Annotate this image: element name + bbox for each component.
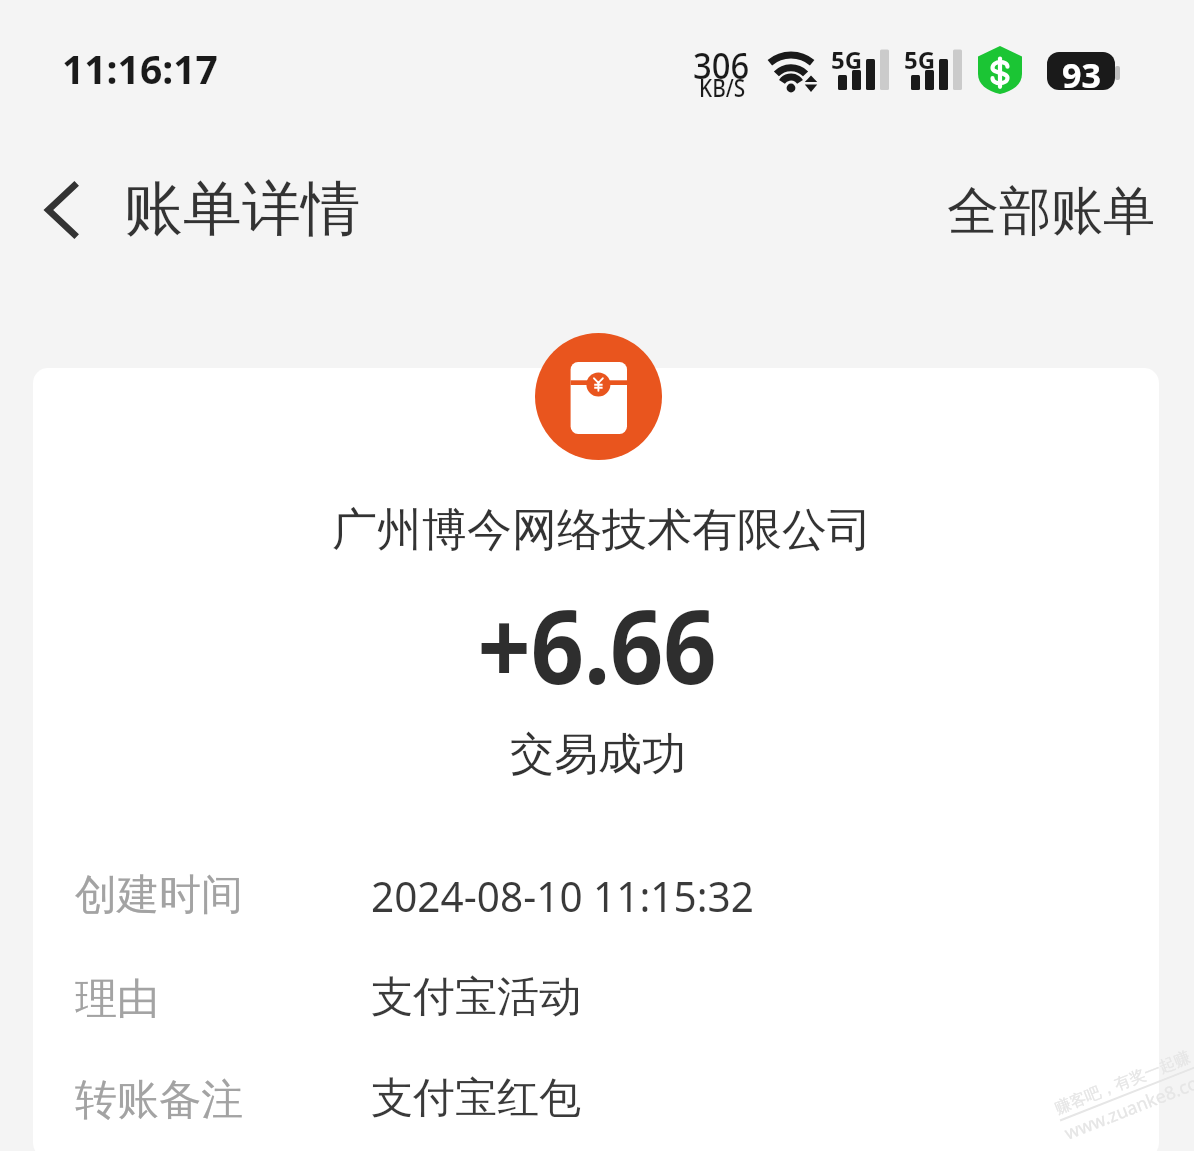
staticText: 创建时间 [75,869,243,922]
staticText: KB/S [699,69,745,104]
staticText: 全部账单 [947,179,1155,245]
staticText: 转账备注 [75,1074,243,1127]
button[interactable]: 全部账单 [928,165,1174,259]
staticText: 306 [693,41,749,90]
staticText: 账单详情 [124,172,360,246]
staticText: 5G [904,43,936,76]
staticText: 支付宝红包 [371,1072,581,1125]
staticText: +6.66 [68,574,1126,714]
staticText: 支付宝活动 [371,971,581,1024]
staticText: 2024-08-10 11:15:32 [371,867,754,924]
staticText: 5G [831,43,863,76]
staticText: 11:16:17 [62,42,218,95]
staticText: www.zuanke8.com [1061,1064,1194,1146]
staticText: 理由 [75,973,159,1026]
staticText: 交易成功 [35,727,1159,782]
staticText: 93 [1062,52,1101,90]
button[interactable]: Back [10,152,112,268]
staticText: 广州博今网络技术有限公司 [39,502,1159,559]
staticText: 赚客吧，有奖一起赚！ [1052,1041,1194,1119]
